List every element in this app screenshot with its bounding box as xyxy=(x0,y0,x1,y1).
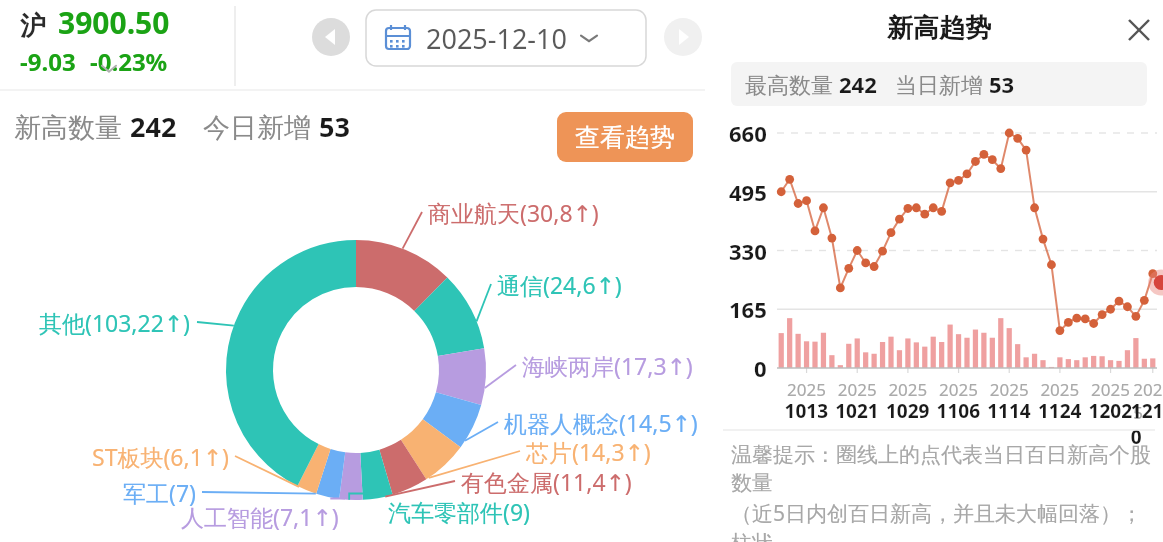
button[interactable]: 2025-12-10 xyxy=(366,10,646,66)
button[interactable]: Previous day xyxy=(312,18,350,56)
button[interactable]: 查看趋势 xyxy=(557,112,693,162)
staticText: 242 xyxy=(130,108,177,145)
staticText: 2025-12-10 xyxy=(426,20,567,57)
staticText: （近5日内创百日新高，并且未大幅回落）；柱状 xyxy=(731,499,1151,542)
staticText: -0.23% xyxy=(90,45,168,78)
staticText: 新高趋势 xyxy=(887,12,991,45)
button[interactable]: Close xyxy=(1119,10,1159,50)
staticText: 沪 xyxy=(20,10,46,43)
staticText: 温馨提示：圈线上的点代表当日百日新高个股数量 xyxy=(731,442,1151,496)
staticText: 3900.50 xyxy=(58,2,170,43)
staticText: -9.03 xyxy=(20,45,76,78)
staticText: 今日新增 xyxy=(203,108,319,145)
staticText: 242 xyxy=(839,69,877,99)
staticText: 最高数量 xyxy=(745,69,839,99)
button[interactable]: Next day xyxy=(664,18,702,56)
staticText: 当日新增 xyxy=(895,69,989,99)
staticText: 查看趋势 xyxy=(575,122,675,153)
staticText: 53 xyxy=(319,108,350,145)
staticText: 新高数量 xyxy=(14,108,130,145)
button[interactable]: Expand index xyxy=(95,58,123,80)
staticText: 53 xyxy=(989,69,1015,99)
